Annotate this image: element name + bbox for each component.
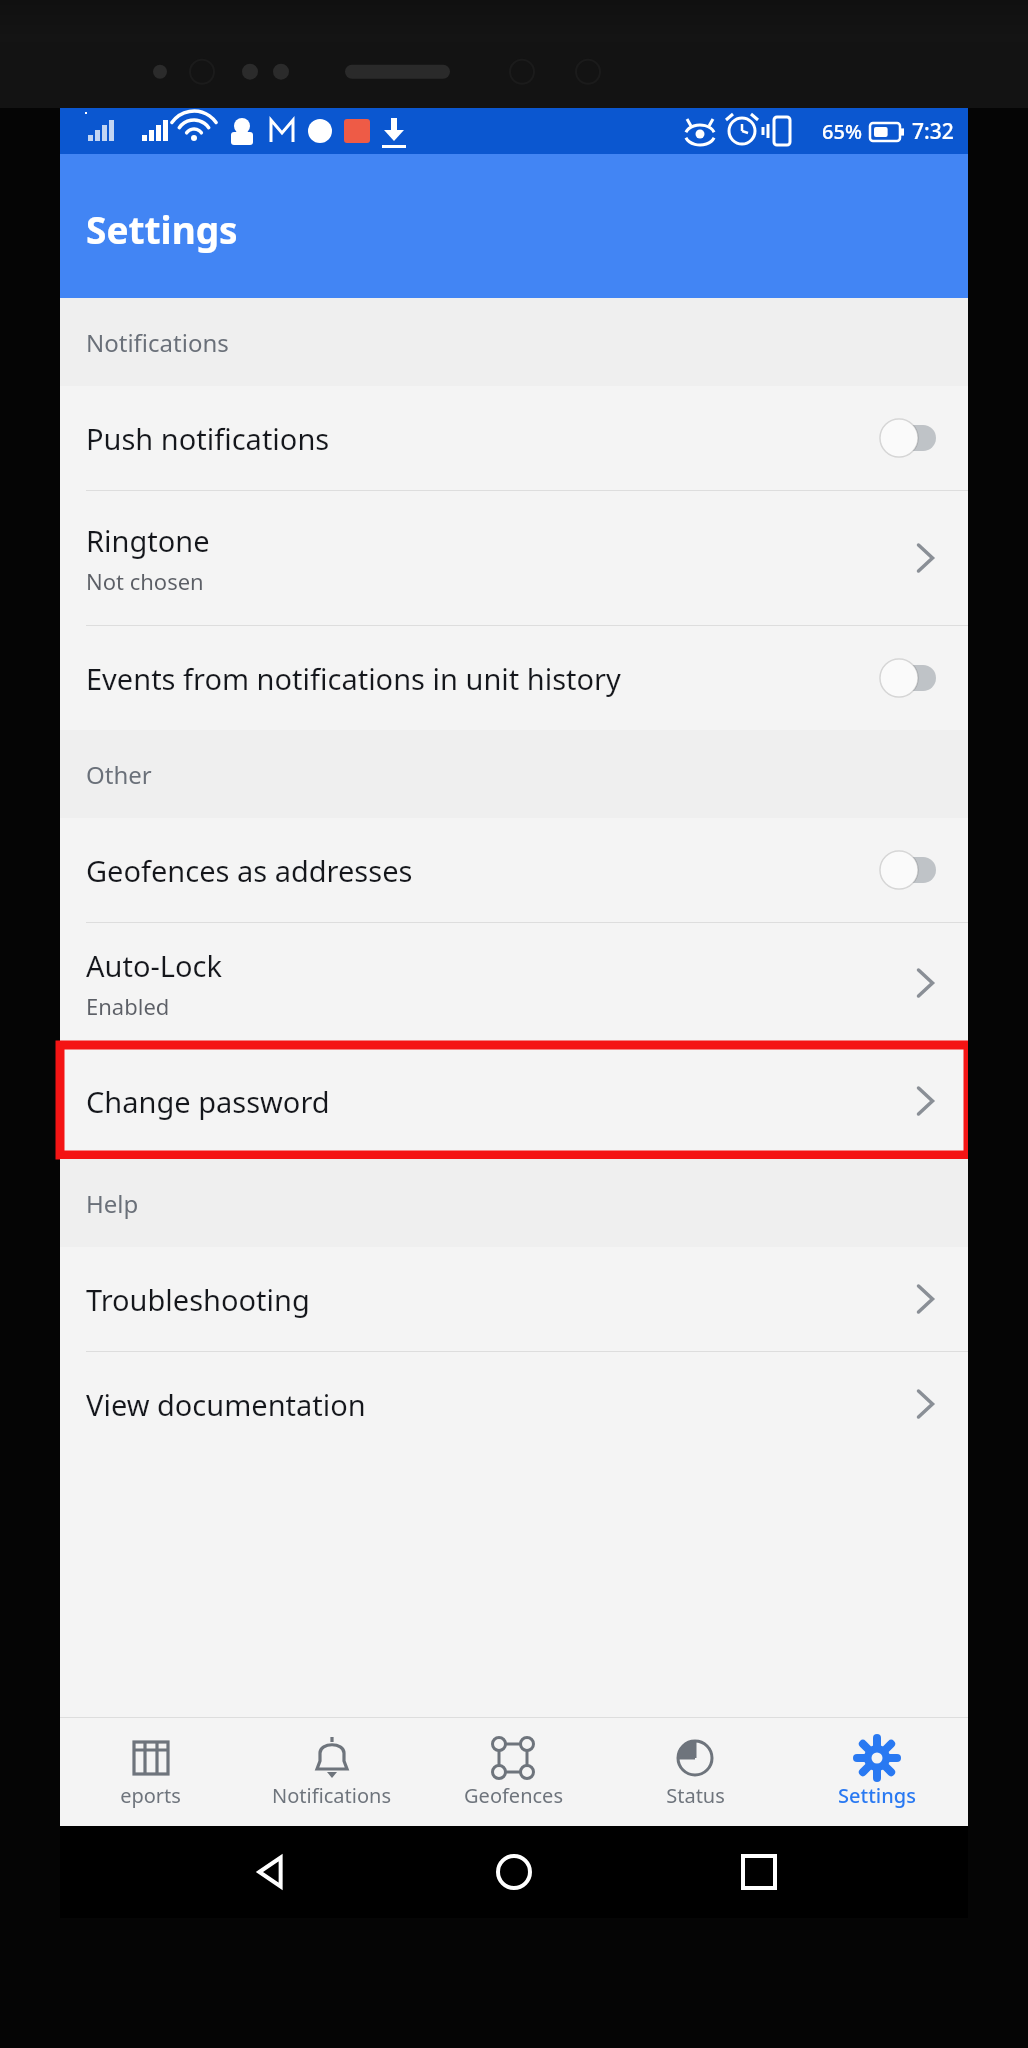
staticText: Status [666, 1782, 725, 1809]
button[interactable]: Events from notifications in unit histor… [60, 626, 968, 730]
button[interactable]: Notifications [241, 1718, 422, 1826]
staticText: 65% [822, 118, 862, 145]
button[interactable]: Settings [786, 1718, 968, 1826]
button[interactable]: Geofences [422, 1718, 604, 1826]
staticText: Settings [838, 1782, 916, 1809]
button[interactable]: eports [60, 1718, 241, 1826]
button[interactable]: Back [235, 1837, 305, 1907]
staticText: Change password [86, 1082, 330, 1121]
button[interactable]: Home [479, 1837, 549, 1907]
staticText: Settings [86, 204, 238, 254]
staticText: Geofences as addresses [86, 851, 868, 890]
staticText: Other [86, 758, 152, 791]
button[interactable]: View documentation [60, 1352, 968, 1456]
button[interactable]: Change password [60, 1043, 968, 1159]
staticText: Geofences [464, 1782, 563, 1809]
button[interactable]: Push notifications [60, 386, 968, 490]
button[interactable]: Auto-Lock [60, 923, 968, 1043]
staticText: Notifications [86, 326, 229, 359]
staticText: Not chosen [86, 566, 204, 596]
staticText: 7:32 [912, 117, 954, 146]
button[interactable]: Recents [724, 1837, 794, 1907]
staticText: Notifications [272, 1782, 391, 1809]
staticText: Troubleshooting [86, 1280, 310, 1319]
button[interactable]: Status [604, 1718, 786, 1826]
staticText: Ringtone [86, 521, 210, 560]
staticText: eports [120, 1782, 181, 1809]
button[interactable]: Ringtone [60, 491, 968, 625]
staticText: Auto-Lock [86, 946, 222, 985]
button[interactable]: Troubleshooting [60, 1247, 968, 1351]
staticText: Enabled [86, 991, 170, 1021]
staticText: Events from notifications in unit histor… [86, 659, 868, 698]
staticText: Push notifications [86, 419, 868, 458]
button[interactable]: Geofences as addresses [60, 818, 968, 922]
staticText: Help [86, 1187, 139, 1220]
staticText: View documentation [86, 1385, 366, 1424]
